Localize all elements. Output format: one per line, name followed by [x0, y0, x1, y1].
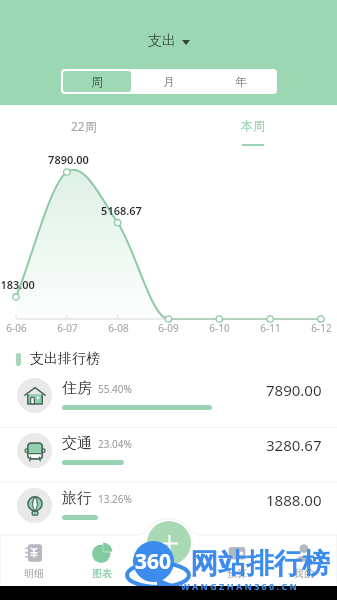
staticText: 年	[235, 74, 247, 89]
staticText: 6-12	[311, 321, 332, 335]
staticText: 22周	[71, 118, 97, 134]
staticText: 6-11	[260, 321, 281, 335]
staticText: 5168.67	[101, 203, 142, 218]
button[interactable]: 年	[207, 71, 275, 92]
staticText: 支出	[148, 32, 176, 50]
staticText: 7890.00	[266, 380, 322, 400]
staticText: 图表	[92, 567, 112, 580]
button[interactable]: 22周	[0, 105, 168, 147]
staticText: 6-09	[158, 321, 179, 335]
staticText: 1888.00	[266, 490, 322, 510]
staticText: 7890.00	[48, 152, 89, 167]
staticText: 月	[163, 74, 175, 89]
staticText: 360	[135, 547, 172, 576]
button[interactable]: 住房	[0, 373, 337, 428]
staticText: 本周	[241, 118, 265, 133]
button[interactable]: 旅行	[0, 483, 337, 538]
button[interactable]: Add	[147, 521, 191, 565]
staticText: 交通	[62, 434, 92, 453]
staticText: 6-06	[6, 321, 27, 335]
staticText: 6-07	[57, 321, 78, 335]
staticText: 3280.67	[266, 435, 322, 455]
button[interactable]: 明细	[0, 535, 68, 600]
button[interactable]: 支出	[148, 32, 190, 50]
staticText: 支出排行榜	[30, 350, 100, 368]
staticText: 旅行	[62, 489, 92, 508]
staticText: 预算	[227, 567, 247, 580]
staticText: 23.04%	[98, 437, 132, 451]
staticText: 明细	[24, 567, 44, 580]
staticText: 我的	[294, 567, 314, 580]
staticText: 6-10	[209, 321, 230, 335]
staticText: 住房	[62, 379, 92, 398]
staticText: 1183.00	[0, 277, 35, 292]
button[interactable]: 图表	[68, 535, 136, 600]
staticText: W A N G Z H A N 3 6 0 . C N	[181, 580, 297, 592]
button[interactable]: 周	[63, 71, 131, 92]
button[interactable]: 我的	[270, 535, 337, 600]
staticText: 周	[91, 74, 103, 89]
button[interactable]: 月	[135, 71, 203, 92]
staticText: 55.40%	[98, 382, 132, 396]
button[interactable]: 本周	[168, 105, 337, 147]
button[interactable]: 交通	[0, 428, 337, 483]
staticText: 网站排行榜	[190, 546, 330, 581]
staticText: 13.26%	[98, 492, 132, 506]
staticText: 6-08	[108, 321, 129, 335]
button[interactable]: 预算	[203, 535, 270, 600]
